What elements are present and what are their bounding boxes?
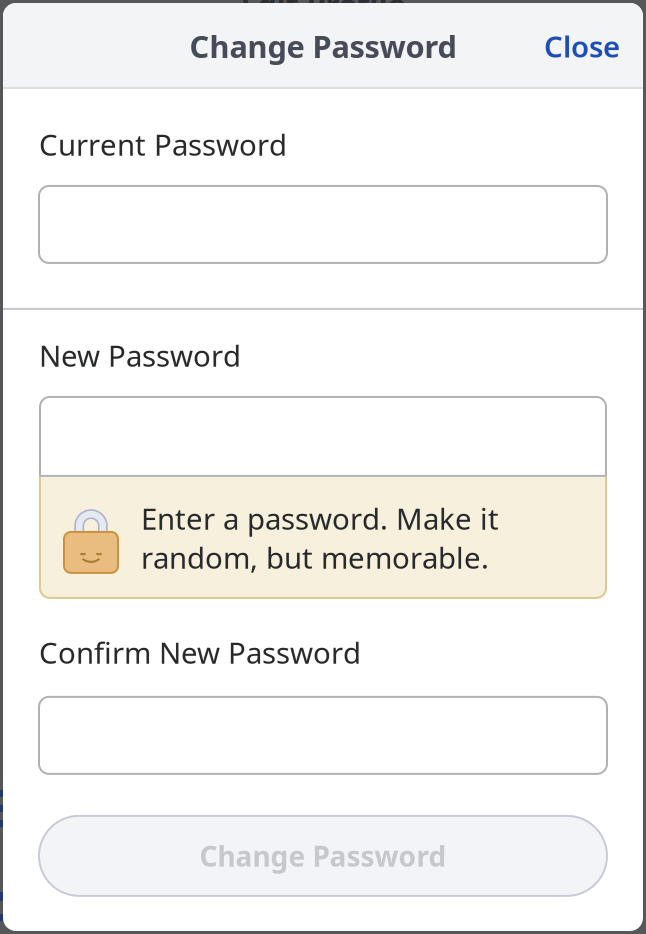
staticText: New Password (39, 336, 241, 375)
staticText: Close (544, 26, 620, 65)
button[interactable]: Change Password (39, 816, 607, 896)
staticText: Confirm New Password (39, 633, 361, 672)
staticText: Edit Profile (240, 0, 405, 25)
staticText: Current Password (39, 125, 287, 164)
staticText: Change Password (189, 26, 456, 66)
staticText: Change Password (199, 837, 446, 874)
staticText: Enter a password. Make it random, but me… (141, 499, 499, 577)
button[interactable]: Close (524, 8, 643, 83)
